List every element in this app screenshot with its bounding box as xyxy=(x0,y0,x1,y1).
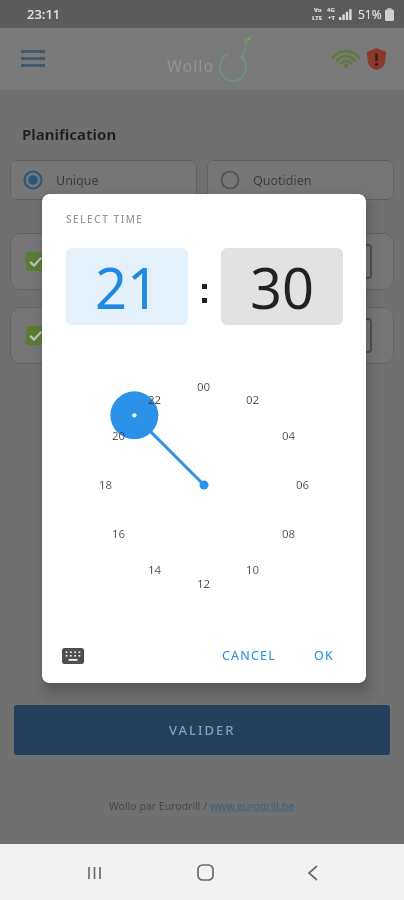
button[interactable]: OK xyxy=(306,639,342,672)
staticText: VALIDER xyxy=(169,721,236,739)
button[interactable]: 20 xyxy=(105,427,133,445)
button[interactable] xyxy=(367,48,386,70)
button[interactable] xyxy=(62,648,84,664)
staticText: 16 xyxy=(112,526,126,542)
staticText: 06 xyxy=(296,477,310,493)
staticText: Quotidien xyxy=(253,172,312,189)
staticText: OK xyxy=(314,647,334,664)
button[interactable] xyxy=(87,867,102,879)
button[interactable]: 08 xyxy=(275,525,303,543)
button[interactable]: Unique xyxy=(10,160,197,200)
staticText: 12 xyxy=(197,576,211,592)
button[interactable]: 00 xyxy=(190,378,218,396)
staticText: 21 xyxy=(95,249,160,325)
staticText: Planification xyxy=(22,124,117,144)
button[interactable]: 02 xyxy=(239,391,267,409)
button[interactable]: 22 xyxy=(141,391,169,409)
staticText: 30 xyxy=(250,249,315,325)
staticText: 51% xyxy=(358,6,382,22)
staticText: 18 xyxy=(99,477,113,493)
staticText: CANCEL xyxy=(222,647,276,664)
button[interactable] xyxy=(334,49,358,69)
button[interactable]: 16 xyxy=(105,525,133,543)
button[interactable]: 12 xyxy=(190,575,218,593)
button[interactable] xyxy=(16,42,50,76)
button[interactable]: CANCEL xyxy=(214,639,284,672)
staticText: LTE xyxy=(312,14,323,22)
staticText: 4G xyxy=(327,6,335,14)
button[interactable]: 21 xyxy=(66,248,188,325)
staticText: SELECT TIME xyxy=(66,212,144,226)
button[interactable]: 06 xyxy=(289,476,317,494)
staticText: 08 xyxy=(282,526,296,542)
button[interactable]: 30 xyxy=(221,248,343,325)
button[interactable] xyxy=(10,307,394,364)
button[interactable] xyxy=(309,866,317,880)
staticText: Vo xyxy=(314,6,322,14)
staticText: 04 xyxy=(282,428,296,444)
button[interactable]: Wollo par Eurodrill / www.eurodrill.be xyxy=(0,799,404,813)
staticText: 20 xyxy=(112,428,126,444)
staticText: Wollo xyxy=(167,55,215,77)
staticText: 00 xyxy=(197,379,211,395)
staticText: Unique xyxy=(56,172,99,189)
button[interactable]: 04 xyxy=(275,427,303,445)
button[interactable]: VALIDER xyxy=(14,705,390,755)
staticText: 14 xyxy=(148,562,162,578)
button[interactable]: 18 xyxy=(92,476,120,494)
staticText: 10 xyxy=(246,562,260,578)
staticText: 22 xyxy=(148,392,162,408)
button[interactable] xyxy=(198,865,213,880)
staticText: Wollo par Eurodrill / www.eurodrill.be xyxy=(109,799,295,813)
staticText: 02 xyxy=(246,392,260,408)
staticText: +T xyxy=(328,14,335,22)
button[interactable] xyxy=(10,233,394,290)
button[interactable]: 14 xyxy=(141,561,169,579)
staticText: 23:11 xyxy=(27,5,61,23)
button[interactable]: Quotidien xyxy=(207,160,394,200)
button[interactable]: 10 xyxy=(239,561,267,579)
